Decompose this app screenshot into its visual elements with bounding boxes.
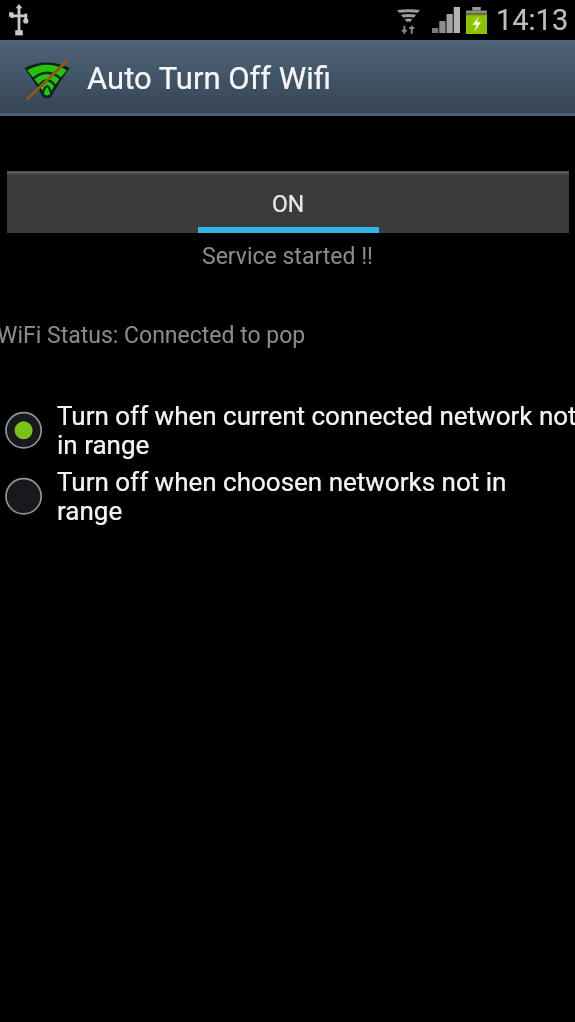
staticText: 14:13: [496, 3, 569, 37]
other: Option: [0, 467, 47, 529]
staticText: Turn off when choosen networks not in ra…: [57, 467, 575, 527]
staticText: Service started !!: [0, 243, 575, 270]
staticText: WiFi Status: Connected to pop: [0, 322, 306, 349]
staticText: Turn off when current connected network …: [57, 401, 575, 461]
other: App icon: [23, 56, 71, 100]
staticText: ON: [272, 191, 305, 218]
button[interactable]: Selected option: [0, 401, 575, 463]
button[interactable]: Option: [0, 467, 575, 529]
other: Wi-Fi: [397, 6, 420, 35]
other: Battery charging: [466, 7, 487, 34]
other: USB connected: [9, 4, 29, 36]
staticText: Auto Turn Off Wifi: [87, 60, 332, 96]
other: Selected option: [0, 401, 47, 463]
button[interactable]: ON: [7, 171, 569, 233]
other: Signal strength: [432, 7, 460, 33]
